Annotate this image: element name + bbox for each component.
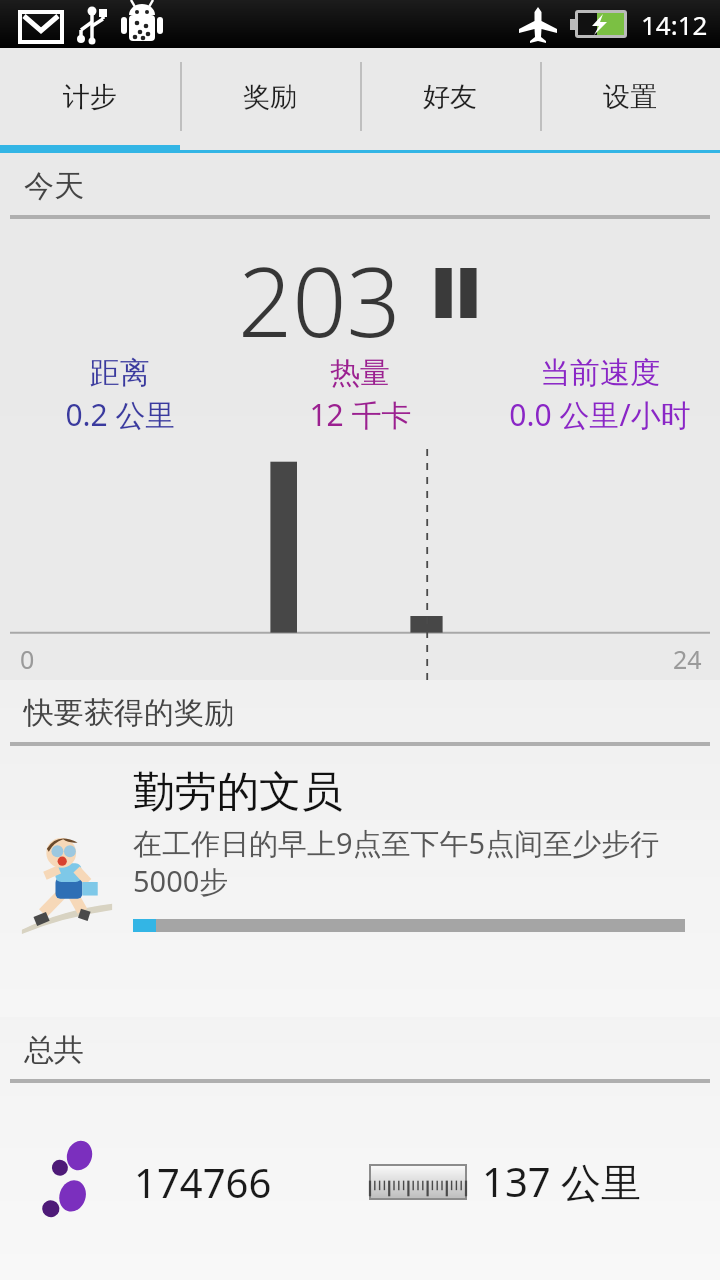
staticText: 距离	[90, 354, 150, 392]
staticText: 总共	[24, 1031, 84, 1069]
button[interactable]: 奖励	[180, 48, 360, 145]
button[interactable]: 174766	[0, 1083, 720, 1280]
staticText: 14:12	[641, 7, 708, 42]
staticText: 174766	[134, 1155, 272, 1209]
staticText: 137 公里	[482, 1154, 642, 1209]
staticText: 今天	[24, 167, 84, 205]
button[interactable]: Pause	[429, 268, 483, 318]
staticText: 当前速度	[540, 354, 660, 392]
staticText: 203	[238, 235, 401, 350]
staticText: 勤劳的文员	[133, 766, 343, 819]
staticText: 0.2 公里	[65, 394, 176, 435]
staticText: 奖励	[243, 80, 297, 114]
staticText: 0	[20, 642, 35, 676]
staticText: 24	[673, 642, 702, 676]
button[interactable]: 勤劳的文员	[0, 746, 720, 1017]
staticText: 计步	[63, 80, 117, 114]
button[interactable]: 计步	[0, 48, 180, 145]
staticText: 在工作日的早上9点至下午5点间至少步行5000步	[133, 823, 685, 901]
button[interactable]: 好友	[360, 48, 540, 145]
button[interactable]: 设置	[540, 48, 720, 145]
staticText: 12 千卡	[309, 394, 412, 435]
staticText: 设置	[603, 80, 657, 114]
staticText: 好友	[423, 80, 477, 114]
staticText: 0.0 公里/小时	[509, 394, 691, 435]
staticText: 热量	[330, 354, 390, 392]
staticText: 快要获得的奖励	[24, 694, 234, 732]
